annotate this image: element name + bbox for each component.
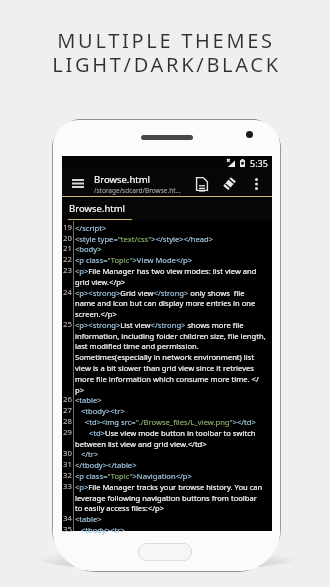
staticText: leverage following navigation buttons fr… <box>75 493 257 503</box>
staticText: 26 <box>63 394 72 405</box>
staticText: <table> <box>75 395 102 405</box>
staticText: view is a bit slower than grid view sinc… <box>75 363 254 373</box>
staticText: between list view and grid view.</td> <box>75 439 207 449</box>
staticText: Browse.html <box>69 202 126 215</box>
button[interactable]: File info <box>190 170 213 197</box>
staticText: 29 <box>63 427 72 438</box>
staticText: more file information which consume more… <box>75 374 259 384</box>
staticText: 32 <box>63 470 72 481</box>
staticText: </script> <box>75 223 107 233</box>
staticText: p> <box>75 385 85 395</box>
staticText: 20 <box>63 233 72 244</box>
staticText: </tbody></table> <box>75 460 137 470</box>
button[interactable]: More options <box>247 170 266 197</box>
staticText: <p>File Manager has two view modes: list… <box>75 266 257 276</box>
button[interactable]: Edit <box>218 170 241 197</box>
staticText: <table> <box>75 514 102 524</box>
staticText: <body> <box>75 244 102 254</box>
staticText: 24 <box>63 287 72 298</box>
staticText: name and icon but can display more entri… <box>75 298 256 308</box>
staticText: 23 <box>63 265 72 276</box>
staticText: <p class="Topic">View Mode</p> <box>75 255 193 265</box>
staticText: <td>Use view mode button in toolbar to s… <box>75 428 256 438</box>
staticText: to easily access files:</p> <box>75 503 165 513</box>
staticText: /storage/sdcard/Browse.ht... <box>94 186 181 195</box>
staticText: 5:35 <box>250 157 268 169</box>
staticText: <p>File Manager tracks your browse histo… <box>75 482 263 492</box>
staticText: 25 <box>63 319 72 330</box>
staticText: MULTIPLE THEMES <box>57 27 275 54</box>
staticText: information, including folder children s… <box>75 331 266 341</box>
staticText: </tr> <box>75 449 99 459</box>
staticText: screen.</p> <box>75 309 117 319</box>
staticText: <p><strong>Grid view</strong> only shows… <box>75 288 245 298</box>
button[interactable]: Navigation drawer <box>66 170 90 197</box>
staticText: Sometimes(especially in network environm… <box>75 352 255 362</box>
staticText: <style type="text/css"></style></head> <box>75 234 214 244</box>
staticText: <tbody><tr> <box>75 406 125 416</box>
staticText: 33 <box>63 481 72 492</box>
staticText: 19 <box>63 222 72 233</box>
staticText: grid view.</p> <box>75 277 126 287</box>
button[interactable]: Browse.html <box>94 173 194 195</box>
staticText: last modified time and permission. <box>75 341 199 351</box>
staticText: 27 <box>63 405 72 416</box>
staticText: 30 <box>63 448 72 459</box>
staticText: Browse.html <box>94 173 151 186</box>
staticText: 31 <box>63 459 72 470</box>
button[interactable]: Browse.html <box>62 197 272 221</box>
staticText: <p class="Topic">Navigation</p> <box>75 471 192 481</box>
staticText: <p><strong>List view</strong> shows more… <box>75 320 244 330</box>
staticText: <tbody><tr> <box>75 525 125 535</box>
staticText: <td><img src="./Browse_files/L_view.png"… <box>75 417 256 427</box>
staticText: LIGHT/DARK/BLACK <box>52 51 281 78</box>
staticText: 28 <box>63 416 72 427</box>
staticText: 34 <box>63 513 72 524</box>
staticText: 21 <box>63 243 72 254</box>
staticText: 35 <box>63 524 72 535</box>
staticText: 22 <box>63 254 72 265</box>
